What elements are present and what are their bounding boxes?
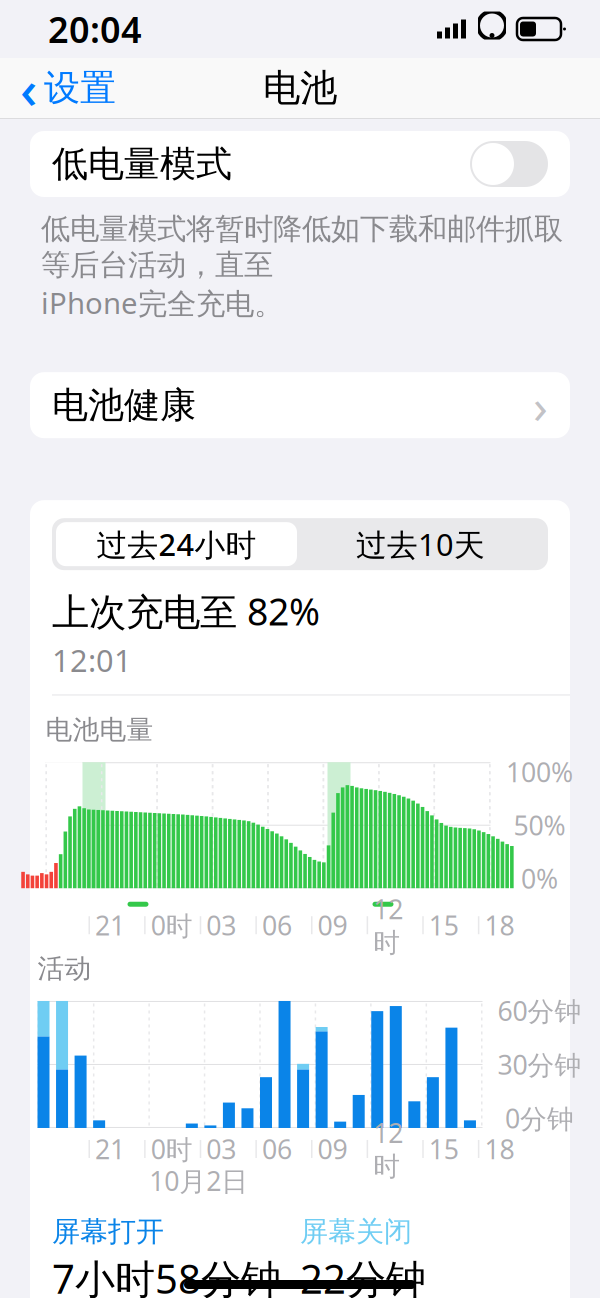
staticText: 03: [206, 1131, 236, 1167]
staticText: 22分钟: [300, 1252, 426, 1298]
staticText: 7小时58分钟: [52, 1252, 281, 1298]
staticText: 活动: [37, 952, 91, 985]
staticText: 0时: [151, 1131, 193, 1167]
staticText: 06: [262, 907, 292, 943]
button[interactable]: 过去10天: [297, 522, 544, 566]
staticText: ›: [533, 373, 548, 437]
staticText: 09: [317, 907, 347, 943]
staticText: 21: [95, 907, 125, 943]
staticText: 12时: [373, 1115, 403, 1183]
button[interactable]: 过去24小时: [56, 522, 297, 566]
staticText: 21: [95, 1131, 125, 1167]
staticText: 06: [262, 1131, 292, 1167]
staticText: 15: [429, 1131, 459, 1167]
staticText: ‹: [20, 53, 37, 123]
button[interactable]: 低电量模式: [30, 131, 570, 197]
staticText: 上次充电至 82%: [52, 586, 320, 636]
staticText: 低电量模式将暂时降低如下载和邮件抓取等后台活动，直至 iPhone完全充电。: [41, 211, 563, 322]
staticText: 低电量模式: [52, 142, 232, 186]
staticText: 12:01: [52, 640, 132, 680]
staticText: 过去10天: [356, 524, 485, 564]
staticText: 50%: [513, 807, 565, 843]
staticText: 电池: [263, 65, 337, 111]
staticText: 屏幕关闭: [300, 1214, 412, 1249]
button[interactable]: 电池健康: [30, 372, 570, 438]
button[interactable]: ‹: [0, 47, 116, 129]
staticText: 100%: [506, 754, 573, 790]
staticText: 18: [484, 907, 514, 943]
staticText: 0分钟: [505, 1101, 574, 1136]
staticText: 18: [484, 1131, 514, 1167]
staticText: 15: [429, 907, 459, 943]
staticText: 屏幕打开: [52, 1214, 164, 1249]
staticText: 12时: [373, 891, 403, 959]
staticText: 03: [206, 907, 236, 943]
staticText: 电池电量: [45, 713, 153, 746]
staticText: 60分钟: [497, 993, 581, 1028]
staticText: 0时: [151, 907, 193, 943]
staticText: 电池健康: [52, 383, 196, 427]
staticText: 设置: [44, 66, 116, 110]
staticText: 0%: [521, 861, 558, 896]
staticText: 过去24小时: [96, 524, 256, 564]
staticText: 20:04: [48, 5, 142, 53]
staticText: 10月2日: [149, 1163, 248, 1198]
staticText: 30分钟: [497, 1047, 581, 1082]
staticText: 09: [317, 1131, 347, 1167]
